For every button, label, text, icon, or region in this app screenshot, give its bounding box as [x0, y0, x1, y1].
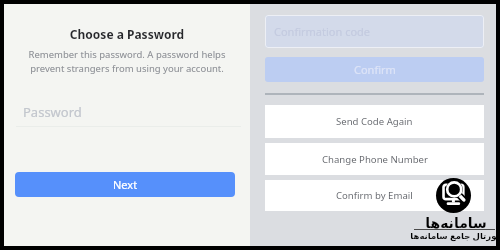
button[interactable]: Confirmation code [265, 15, 484, 48]
staticText: Remember this password. A password helps… [4, 48, 250, 75]
staticText: Password [23, 103, 82, 121]
staticText: پورتال جامع سامانه‌ها [405, 230, 500, 242]
button[interactable]: Next [15, 172, 235, 197]
staticText: Confirm by Email [336, 189, 413, 202]
button[interactable]: Confirm by Email [265, 180, 484, 211]
staticText: Confirmation code [274, 24, 371, 39]
button[interactable]: Password [16, 100, 241, 128]
staticText: Send Code Again [336, 115, 413, 128]
staticText: Change Phone Number [322, 153, 428, 166]
staticText: سامانه‌ها [411, 215, 500, 231]
staticText: Next [113, 177, 138, 192]
button[interactable]: Change Phone Number [265, 143, 484, 175]
staticText: Choose a Password [4, 26, 250, 42]
button[interactable]: Send Code Again [265, 105, 484, 138]
button[interactable]: Confirm [265, 57, 484, 82]
other: Samaneha logo [436, 178, 471, 213]
staticText: Confirm [354, 62, 396, 77]
